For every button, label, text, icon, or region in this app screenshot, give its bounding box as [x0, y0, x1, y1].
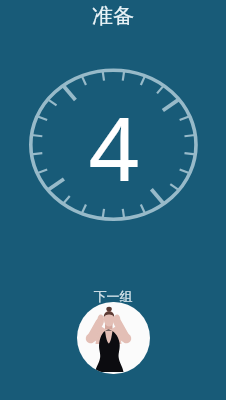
button[interactable]: Next exercise preview: [77, 302, 150, 374]
staticText: 准备: [0, 3, 226, 29]
staticText: 4: [1, 87, 226, 207]
staticText: 下一组: [0, 288, 226, 304]
